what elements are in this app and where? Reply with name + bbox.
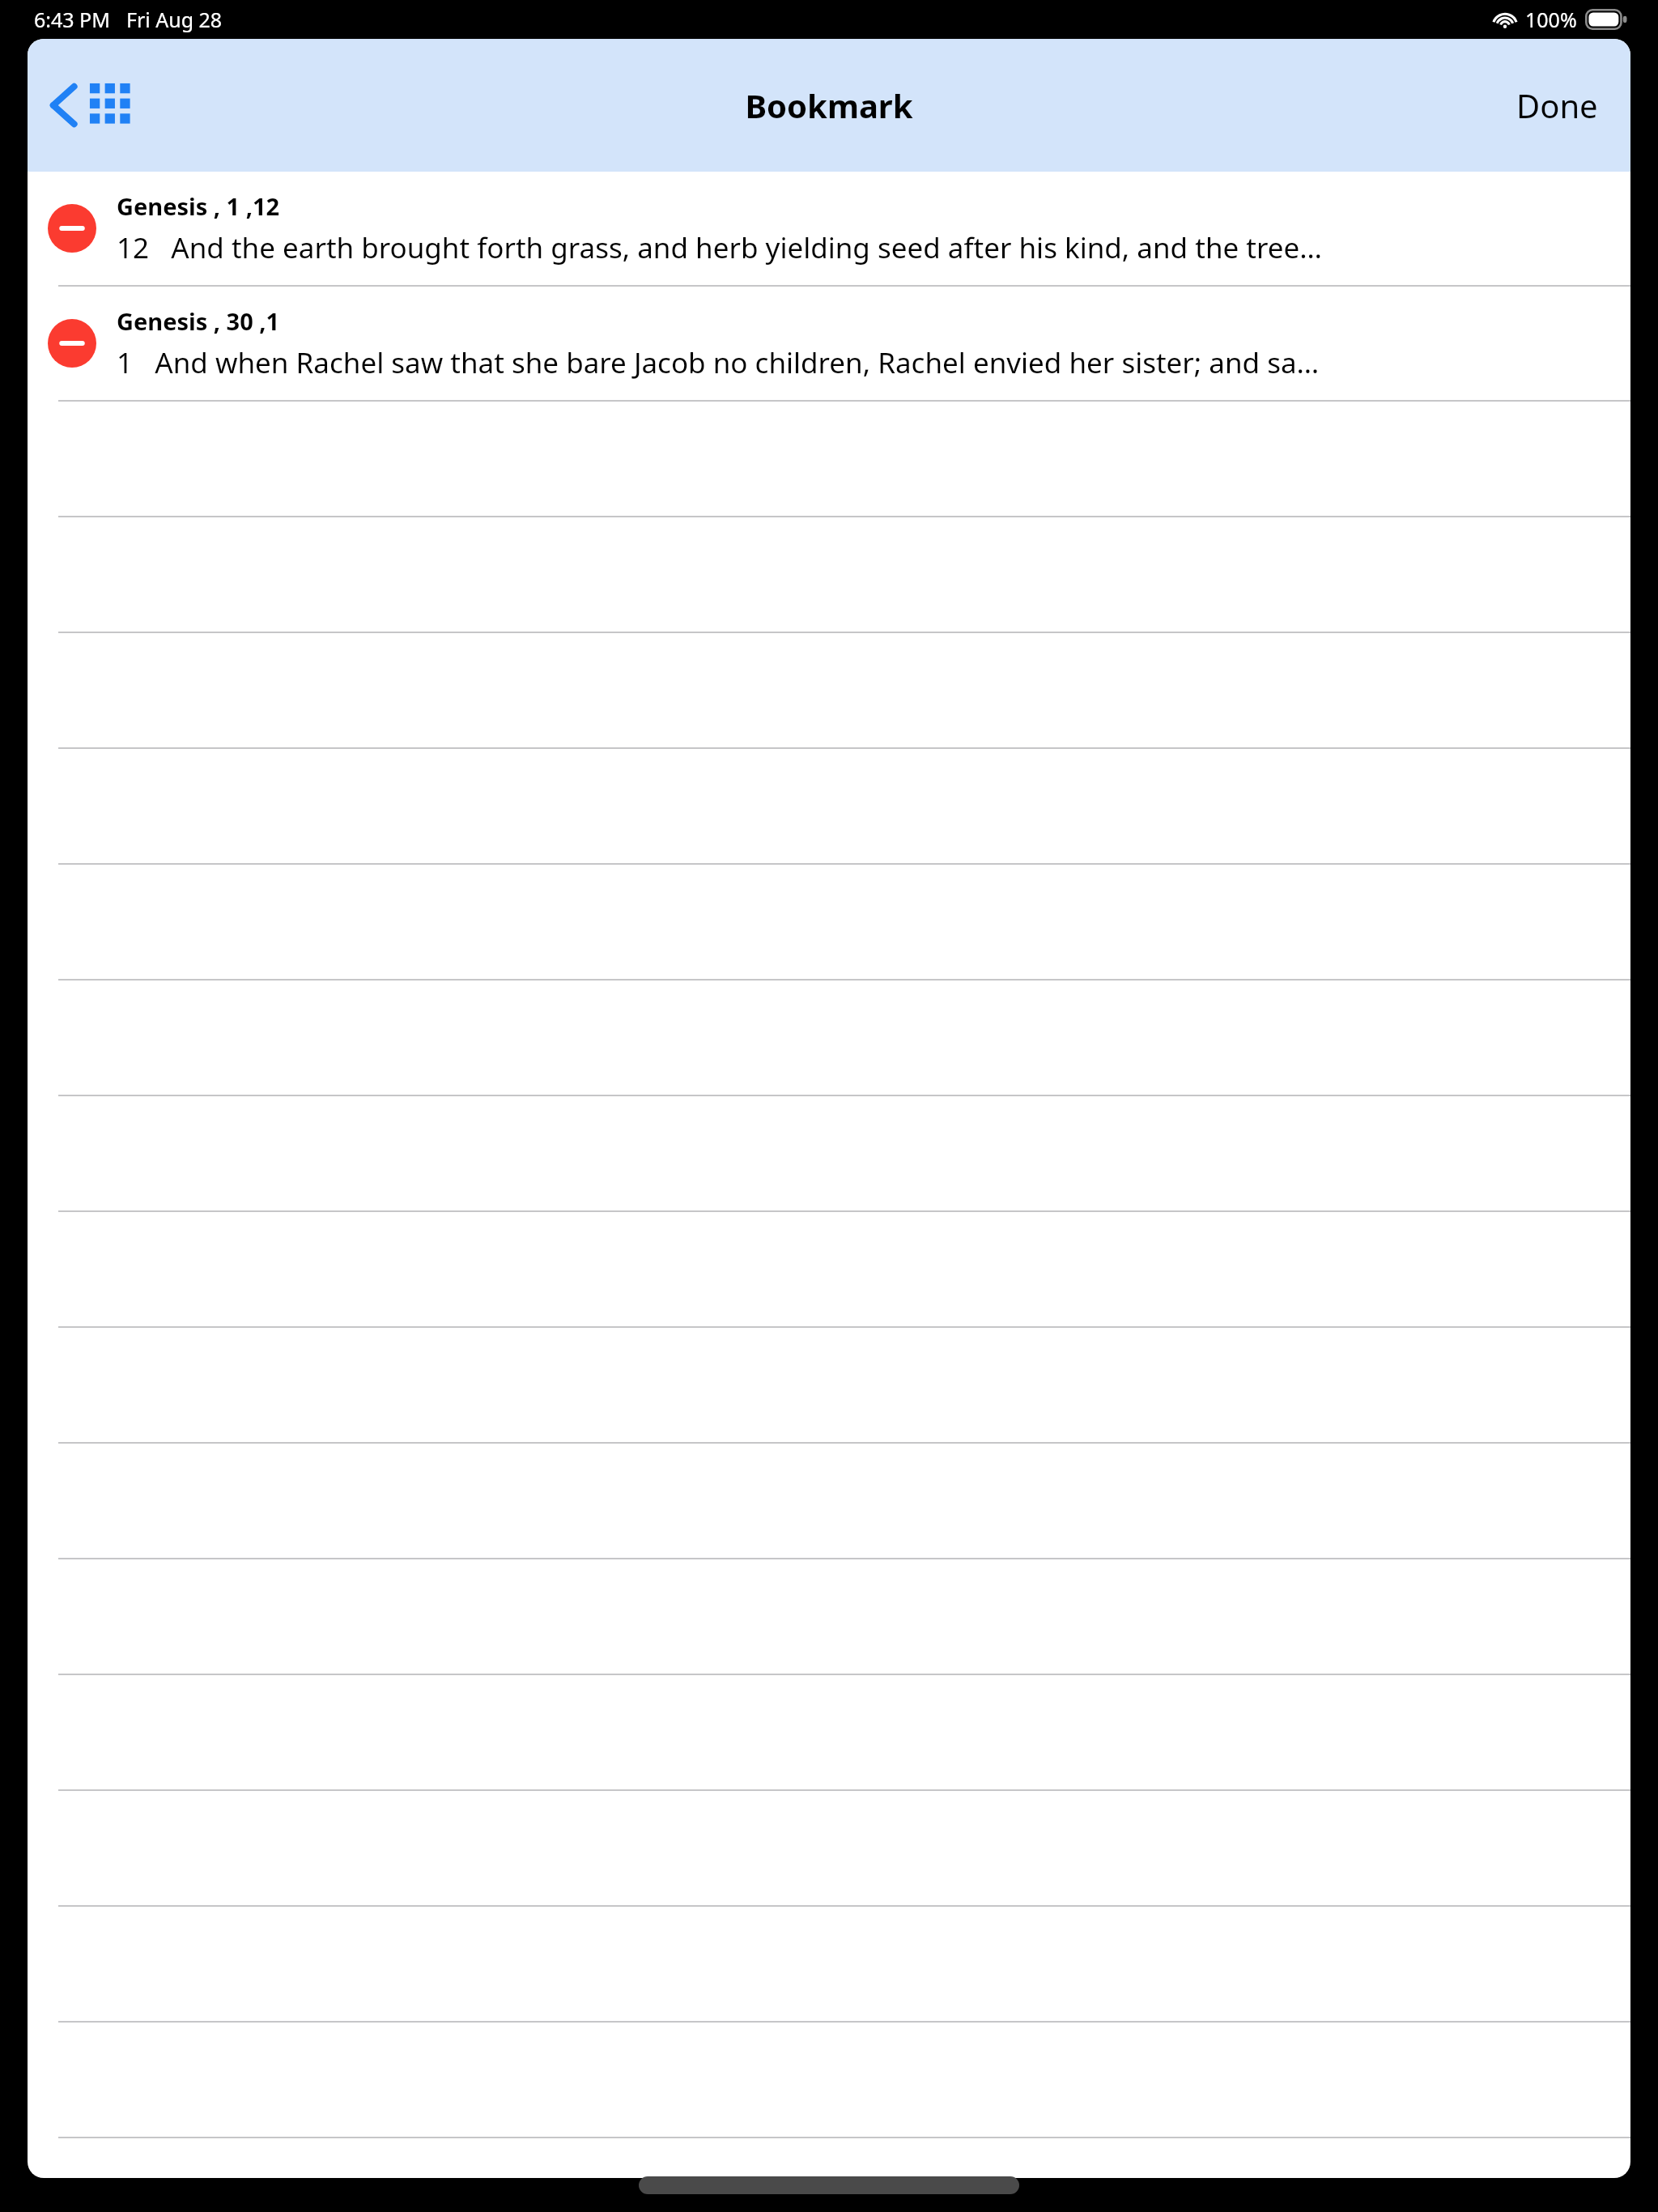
staticText: 12 And the earth brought forth grass, an… xyxy=(117,228,1322,267)
staticText: 1 And when Rachel saw that she bare Jaco… xyxy=(117,343,1320,382)
button[interactable]: Back to grid xyxy=(39,70,144,140)
staticText: 100% xyxy=(1525,6,1577,33)
staticText: Genesis , 1 ,12 xyxy=(117,190,280,222)
button[interactable]: Delete bookmark xyxy=(28,287,1630,400)
button[interactable]: Done xyxy=(1505,72,1609,138)
staticText: Done xyxy=(1516,83,1598,127)
staticText: Fri Aug 28 xyxy=(126,6,223,33)
button[interactable]: Delete bookmark xyxy=(48,319,96,368)
staticText: Bookmark xyxy=(745,83,913,127)
staticText: 6:43 PM xyxy=(34,6,110,33)
staticText: Genesis , 30 ,1 xyxy=(117,305,280,337)
button[interactable]: Delete bookmark xyxy=(48,204,96,253)
button[interactable]: Delete bookmark xyxy=(28,172,1630,285)
